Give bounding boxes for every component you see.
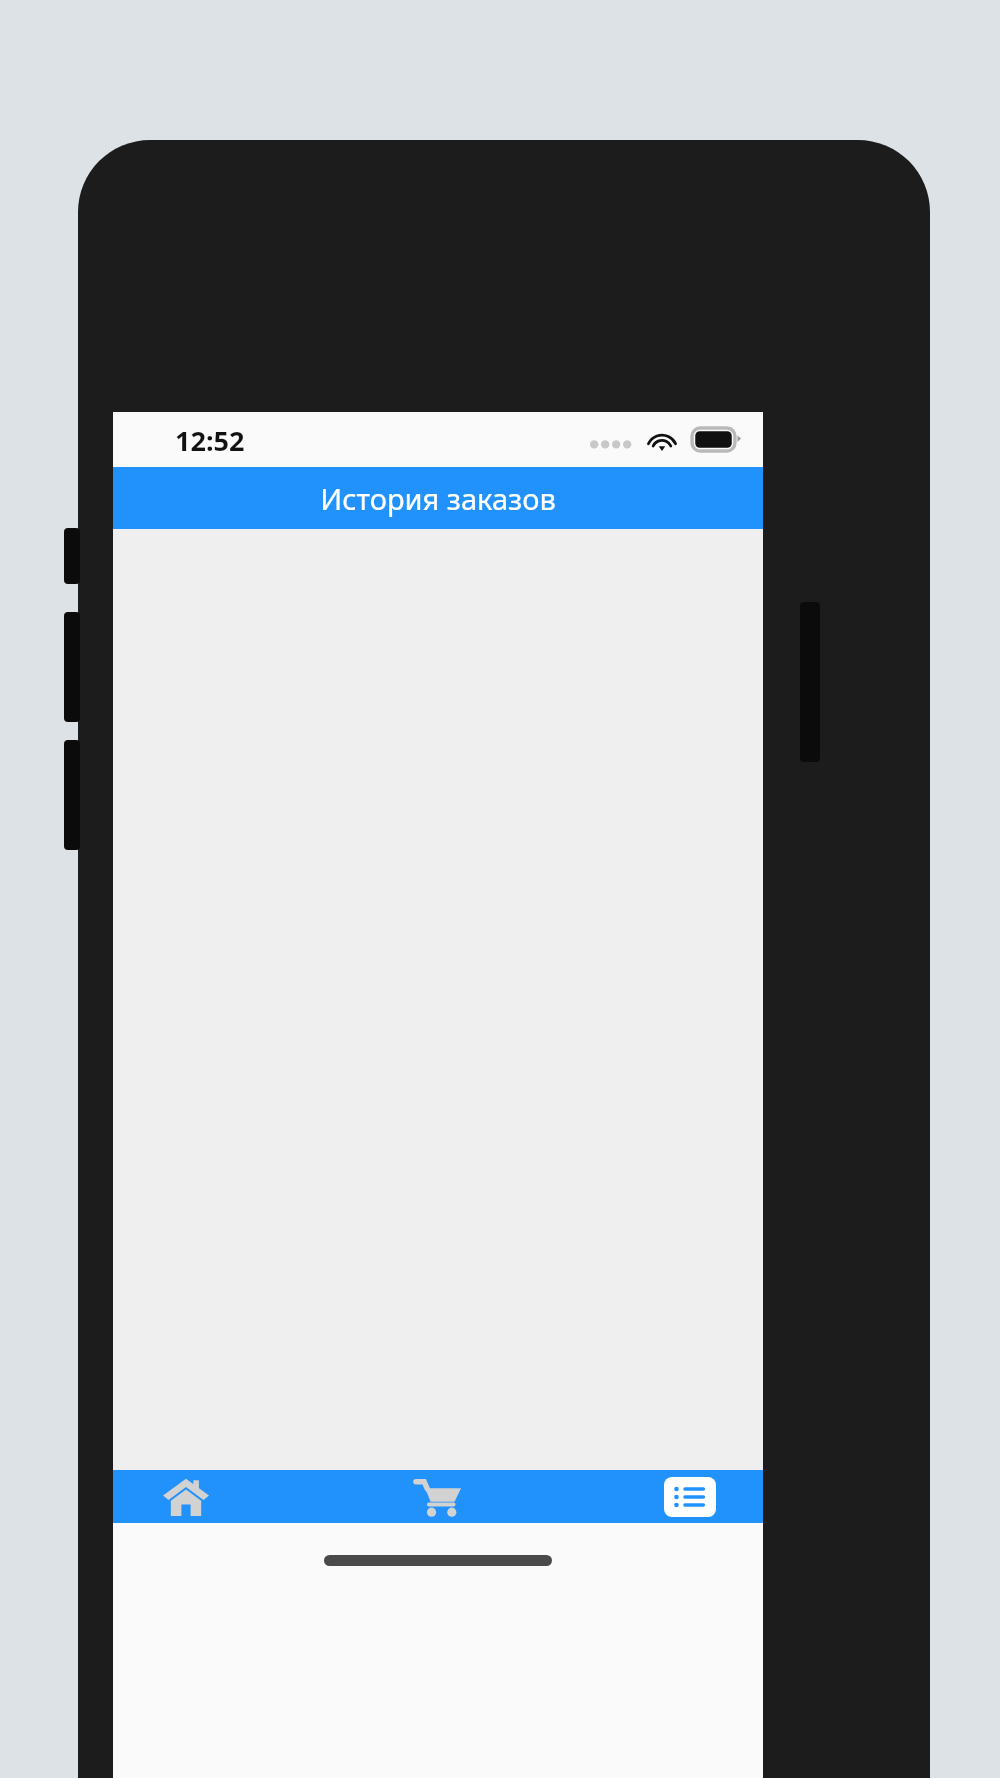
staticText: История заказов <box>320 479 556 518</box>
button[interactable]: Orders list <box>546 1470 763 1523</box>
button[interactable]: Home <box>113 1470 329 1523</box>
staticText: 12:52 <box>175 422 245 459</box>
button[interactable]: Cart <box>329 1470 546 1523</box>
